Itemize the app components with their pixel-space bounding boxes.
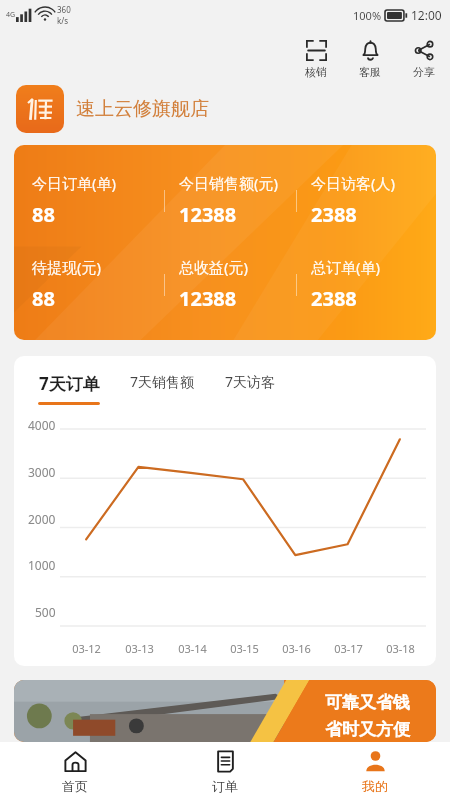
staticText: 待提现(元) <box>32 257 102 277</box>
staticText: 03-17 <box>334 641 363 656</box>
staticText: 2388 <box>311 285 357 312</box>
button[interactable]: 客服 <box>354 36 386 81</box>
staticText: 12388 <box>179 285 237 312</box>
staticText: 360 <box>57 4 71 15</box>
staticText: 7天销售额 <box>130 372 195 391</box>
staticText: 88 <box>32 285 55 312</box>
staticText: 2000 <box>28 511 56 527</box>
button[interactable]: 7天销售额 <box>128 372 197 398</box>
button[interactable]: 速上云修旗舰店 <box>0 81 450 137</box>
staticText: 可靠又省钱 <box>325 692 410 713</box>
staticText: 我的 <box>362 778 388 794</box>
staticText: 88 <box>32 201 55 228</box>
staticText: 首页 <box>62 778 88 794</box>
button[interactable]: 首页 <box>0 742 150 800</box>
staticText: 速上云修旗舰店 <box>76 97 209 121</box>
staticText: k/s <box>57 15 69 26</box>
button[interactable]: 7天访客 <box>223 372 278 398</box>
staticText: 客服 <box>359 65 381 79</box>
staticText: 今日销售额(元) <box>179 173 279 193</box>
staticText: 1000 <box>28 557 56 573</box>
button[interactable]: 7天订单 <box>36 372 102 405</box>
button[interactable]: 分享 <box>408 36 440 81</box>
button[interactable]: 我的 <box>300 742 450 800</box>
button[interactable]: 核销 <box>300 36 332 81</box>
staticText: 总收益(元) <box>179 257 249 277</box>
staticText: 7天访客 <box>225 372 276 391</box>
button[interactable]: 订单 <box>150 742 300 800</box>
staticText: 分享 <box>413 65 435 79</box>
staticText: 总订单(单) <box>311 257 381 277</box>
staticText: 核销 <box>305 65 327 79</box>
staticText: 今日访客(人) <box>311 173 396 193</box>
staticText: 100% <box>353 8 382 23</box>
staticText: 今日订单(单) <box>32 173 117 193</box>
staticText: 2388 <box>311 201 357 228</box>
staticText: 03-15 <box>230 641 259 656</box>
staticText: 03-18 <box>386 641 415 656</box>
staticText: 7天订单 <box>39 372 100 395</box>
staticText: 03-14 <box>178 641 207 656</box>
button[interactable]: 今日订单(单) <box>14 145 436 340</box>
staticText: 03-12 <box>72 641 101 656</box>
staticText: 12:00 <box>411 7 442 23</box>
staticText: 3000 <box>28 464 56 480</box>
staticText: 03-13 <box>125 641 154 656</box>
staticText: 4000 <box>28 417 56 433</box>
staticText: 省时又方便 <box>325 719 410 740</box>
staticText: 03-16 <box>282 641 311 656</box>
staticText: 订单 <box>212 778 238 794</box>
staticText: 500 <box>35 604 56 620</box>
staticText: 4G <box>6 10 16 20</box>
button[interactable]: 可靠又省钱 <box>14 680 436 742</box>
staticText: 12388 <box>179 201 237 228</box>
